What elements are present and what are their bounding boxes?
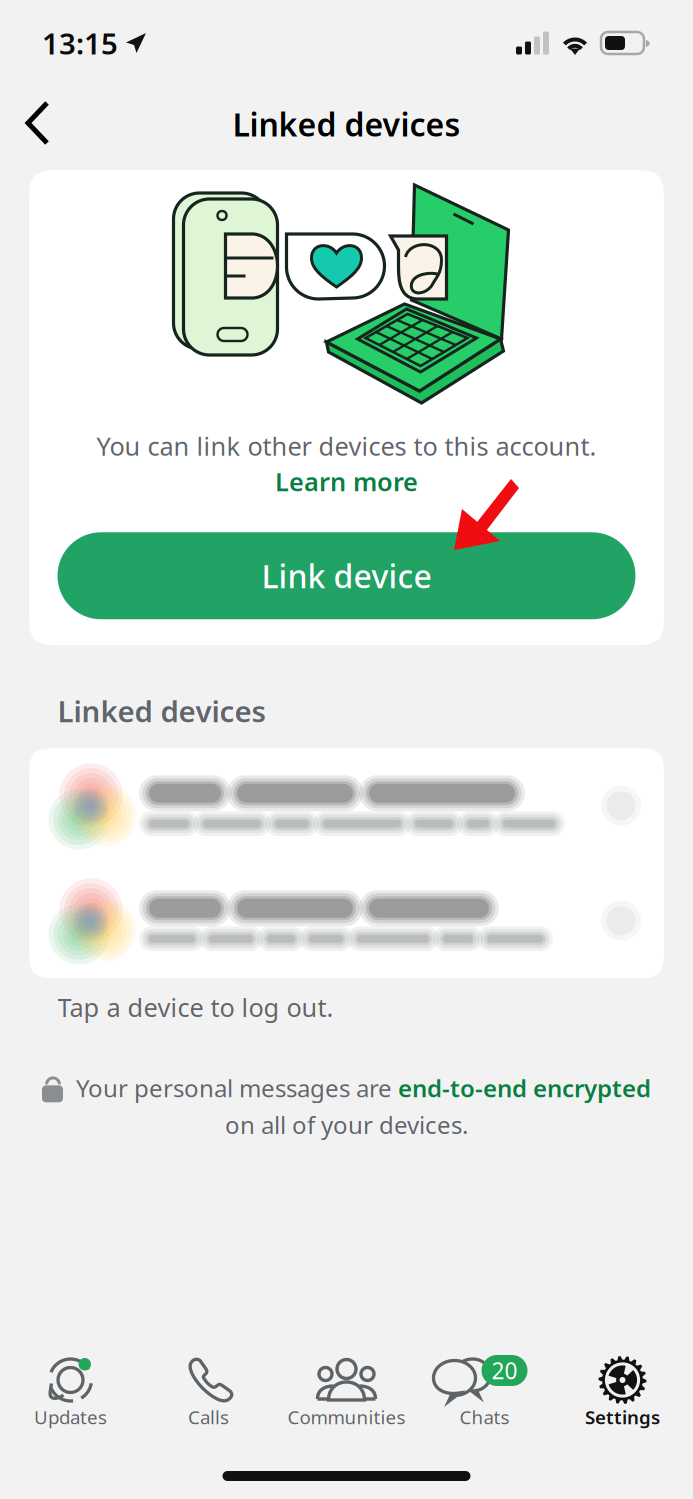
staticText: on all of your devices. [225, 1109, 468, 1141]
staticText: You can link other devices to this accou… [96, 429, 596, 463]
button[interactable]: Back [0, 92, 76, 156]
staticText: Updates [34, 1405, 107, 1429]
staticText: Linked devices [232, 103, 460, 145]
staticText: Link device [261, 554, 431, 597]
staticText: Chats [459, 1405, 509, 1429]
button[interactable]: 20 [415, 1356, 553, 1430]
staticText: Linked devices [57, 691, 265, 730]
button[interactable] [29, 748, 664, 863]
staticText: Your personal messages are [64, 1072, 398, 1104]
staticText: Calls [188, 1405, 229, 1429]
button[interactable]: Link device [57, 532, 635, 619]
button[interactable]: Settings [553, 1356, 691, 1430]
staticText: Learn more [275, 465, 418, 498]
button[interactable] [29, 863, 664, 978]
staticText: Communities [287, 1405, 405, 1429]
button[interactable]: Communities [277, 1356, 415, 1430]
staticText: Settings [585, 1405, 660, 1429]
button[interactable]: Calls [139, 1356, 277, 1430]
button[interactable]: Updates [1, 1356, 139, 1430]
button[interactable]: Learn more [275, 463, 418, 498]
staticText: Tap a device to log out. [57, 990, 333, 1024]
staticText: 20 [491, 1355, 517, 1385]
staticText: end-to-end encrypted [398, 1072, 651, 1104]
staticText: 13:15 [42, 23, 118, 62]
